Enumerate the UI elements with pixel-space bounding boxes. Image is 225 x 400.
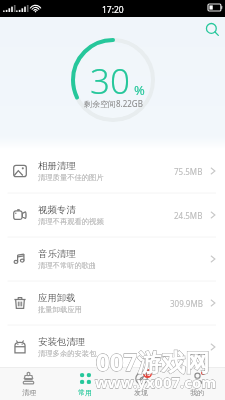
button[interactable]: 清理 bbox=[0, 368, 57, 400]
button[interactable]: Search bbox=[201, 19, 223, 41]
button[interactable]: 相册清理 bbox=[0, 149, 225, 193]
staticText: 相册清理 bbox=[38, 160, 76, 172]
staticText: 16 bbox=[144, 370, 151, 377]
staticText: % bbox=[134, 81, 145, 99]
staticText: 我的 bbox=[190, 388, 204, 397]
button[interactable]: 我的 bbox=[169, 368, 225, 400]
staticText: 应用卸载 bbox=[38, 292, 76, 304]
staticText: 常用 bbox=[78, 388, 92, 397]
button[interactable]: 视频专清 bbox=[0, 193, 225, 237]
staticText: 309.9MB bbox=[170, 298, 203, 309]
button[interactable]: 16 bbox=[113, 368, 169, 400]
button[interactable]: 音乐清理 bbox=[0, 237, 225, 281]
button[interactable]: 安装包清理 bbox=[0, 325, 225, 369]
staticText: 清理质量不佳的图片 bbox=[38, 173, 104, 182]
staticText: 17:20 bbox=[102, 4, 124, 16]
staticText: www.yx007.com bbox=[95, 372, 217, 392]
staticText: 剩余空间8.22GB bbox=[84, 98, 143, 109]
staticText: 007游戏网 bbox=[96, 345, 210, 378]
staticText: 清理 bbox=[22, 388, 36, 397]
staticText: 清理不常听的歌曲 bbox=[38, 261, 97, 270]
staticText: 清理多余的安装包 bbox=[38, 349, 97, 358]
staticText: 007游戏网 bbox=[96, 345, 210, 378]
staticText: 安装包清理 bbox=[38, 336, 85, 348]
button[interactable]: 常用 bbox=[57, 368, 113, 400]
staticText: 音乐清理 bbox=[38, 248, 76, 260]
staticText: 24.5MB bbox=[174, 210, 203, 221]
button[interactable]: 应用卸载 bbox=[0, 281, 225, 325]
staticText: 30 bbox=[90, 57, 130, 105]
staticText: 发现 bbox=[134, 388, 148, 397]
staticText: 75.5MB bbox=[174, 166, 203, 177]
staticText: 视频专清 bbox=[38, 204, 76, 216]
staticText: www.yx007.com bbox=[95, 372, 217, 392]
staticText: 批量卸载应用 bbox=[38, 305, 82, 314]
staticText: 清理不再观看的视频 bbox=[38, 217, 104, 226]
